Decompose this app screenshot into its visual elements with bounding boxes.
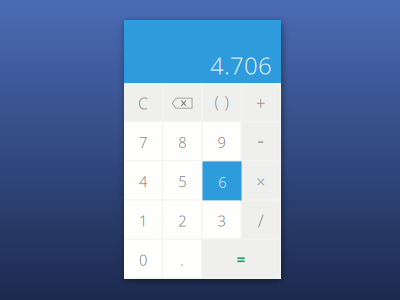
staticText: . [180, 250, 184, 270]
button[interactable]: / [242, 201, 280, 238]
staticText: 3 [217, 211, 225, 231]
button[interactable]: 0 [124, 240, 162, 278]
button[interactable]: Equals [202, 240, 280, 278]
staticText: ( [214, 91, 218, 112]
staticText: 4.706 [210, 49, 272, 81]
button[interactable]: 8 [163, 122, 201, 160]
button[interactable]: + [242, 83, 280, 121]
button[interactable]: 3 [202, 201, 240, 238]
staticText: × [256, 171, 265, 192]
staticText: 8 [178, 133, 186, 152]
staticText: / [258, 209, 264, 232]
button[interactable]: 6 [202, 161, 242, 201]
button[interactable]: Delete [163, 83, 201, 121]
button[interactable]: × [242, 161, 280, 199]
staticText: + [256, 91, 266, 114]
staticText: ) [224, 91, 228, 112]
button[interactable]: Minus [242, 122, 280, 160]
button[interactable]: Display 4.706 [124, 20, 281, 83]
button[interactable]: Parentheses [202, 83, 240, 121]
staticText: 1 [139, 211, 147, 231]
staticText: 2 [178, 211, 186, 231]
staticText: 7 [139, 133, 147, 152]
button[interactable]: . [163, 240, 201, 278]
button[interactable]: 9 [202, 122, 240, 160]
staticText: C [138, 93, 148, 114]
button[interactable]: 1 [124, 201, 162, 238]
staticText: 0 [139, 250, 147, 270]
staticText: 6 [218, 173, 226, 192]
staticText: 9 [217, 133, 225, 152]
staticText: 5 [178, 172, 186, 191]
button[interactable]: 5 [163, 161, 201, 199]
button[interactable]: 2 [163, 201, 201, 238]
button[interactable]: 7 [124, 122, 162, 160]
button[interactable]: 4 [124, 161, 162, 199]
button[interactable]: C [124, 83, 162, 121]
staticText: 4 [139, 172, 147, 191]
